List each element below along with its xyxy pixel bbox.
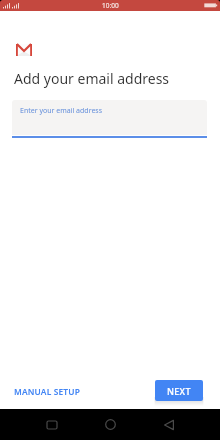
button[interactable]: Enter your email address <box>12 100 207 137</box>
button[interactable]: Home <box>94 409 126 440</box>
button[interactable]: MANUAL SETUP <box>8 380 86 402</box>
staticText: NEXT <box>167 385 191 397</box>
staticText: Add your email address <box>14 69 170 88</box>
staticText: MANUAL SETUP <box>14 386 80 397</box>
staticText: 10:00 <box>102 1 119 10</box>
button[interactable]: Recent apps <box>36 409 68 440</box>
button[interactable]: Back <box>153 409 185 440</box>
button[interactable]: NEXT <box>155 380 203 401</box>
staticText: Enter your email address <box>20 106 103 116</box>
